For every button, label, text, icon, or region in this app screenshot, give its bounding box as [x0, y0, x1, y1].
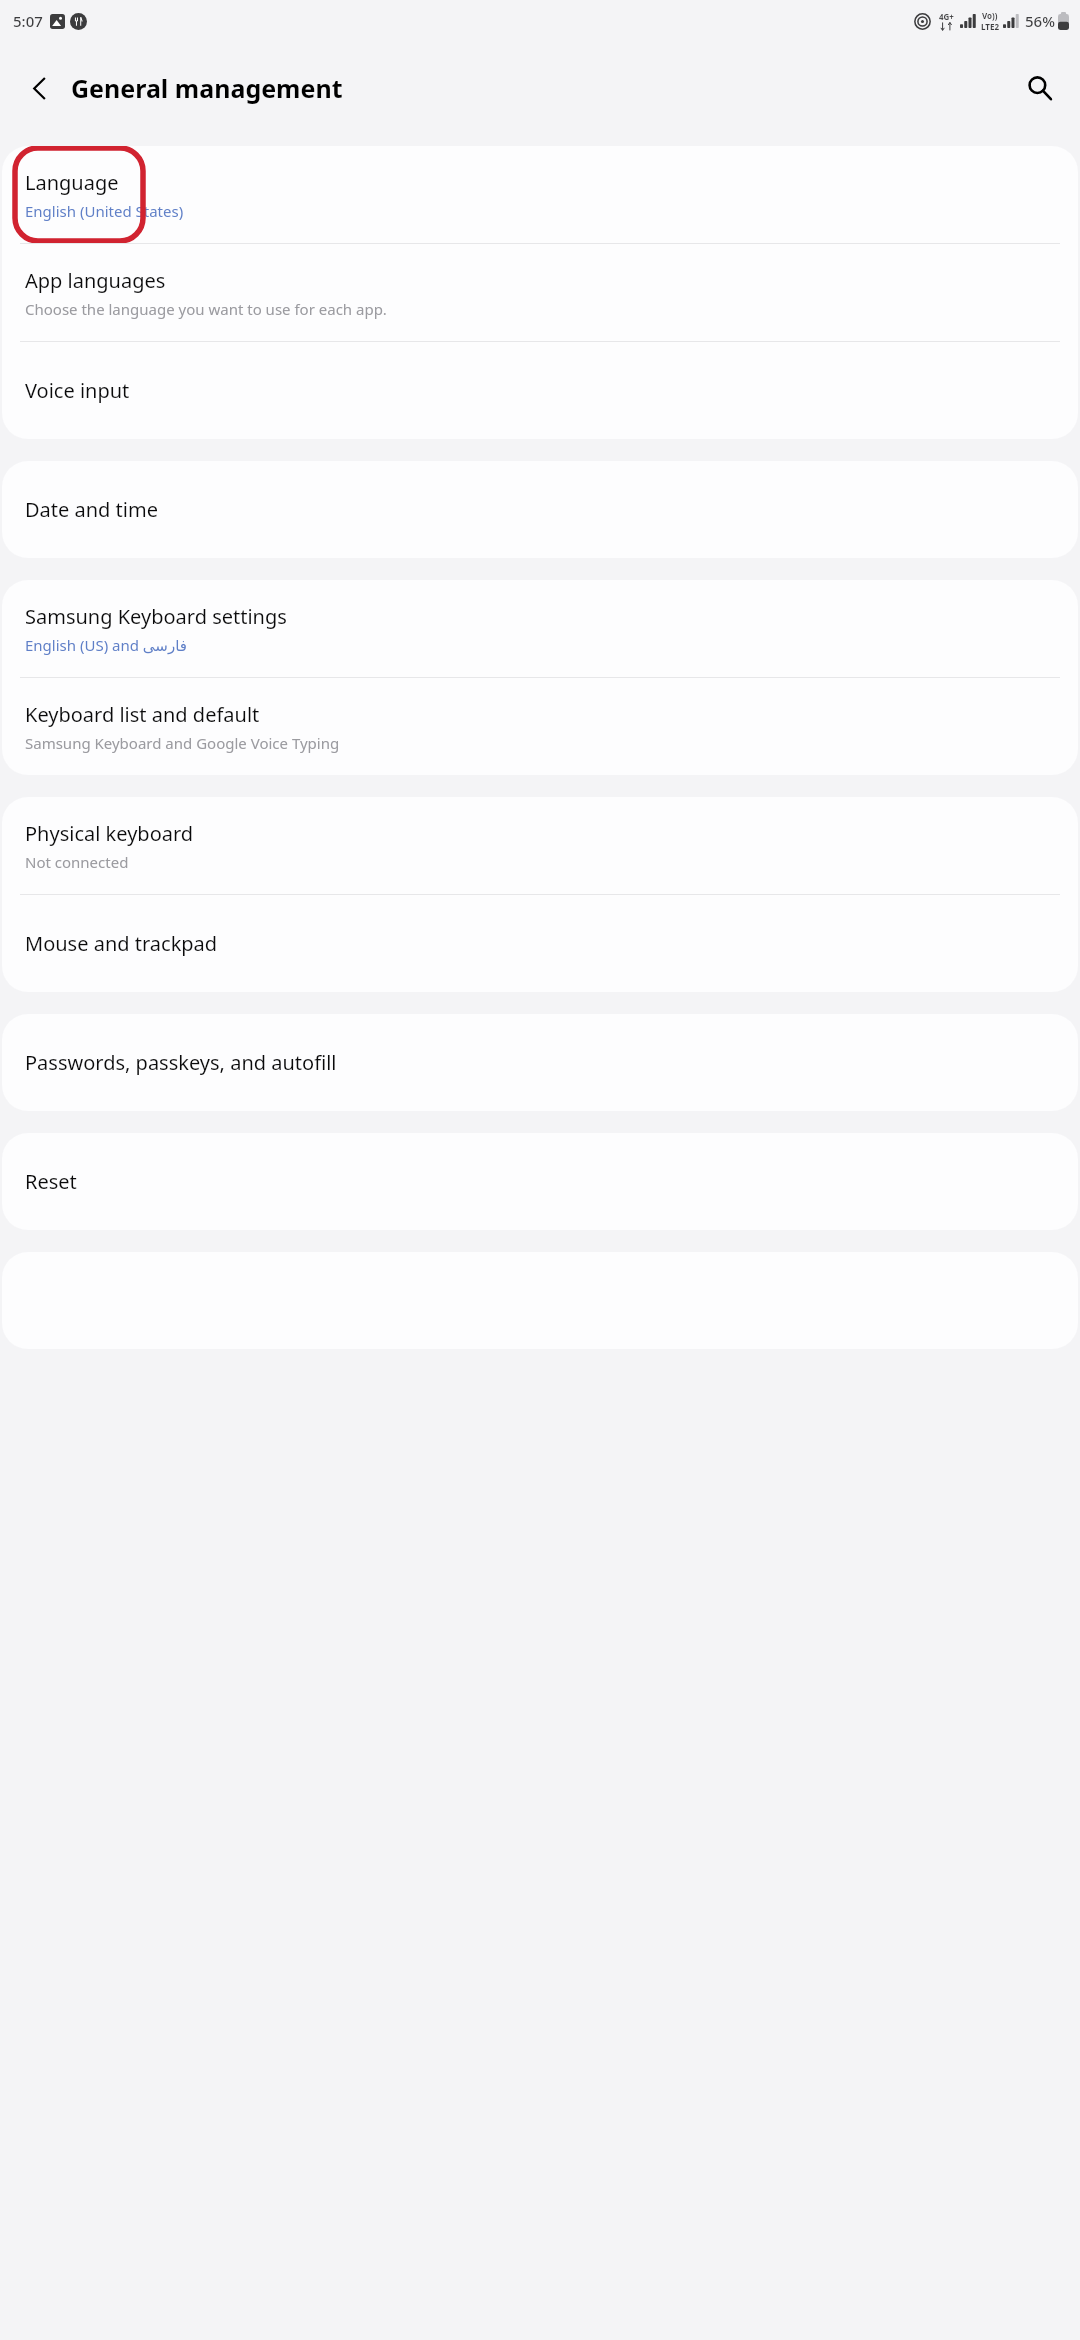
staticText: 5:07: [13, 11, 43, 31]
button[interactable]: Keyboard list and default: [2, 678, 1078, 775]
button[interactable]: Back: [13, 62, 65, 114]
staticText: Date and time: [25, 496, 158, 523]
staticText: English (United States): [25, 201, 184, 221]
staticText: App languages: [25, 267, 166, 294]
staticText: Samsung Keyboard and Google Voice Typing: [25, 733, 340, 753]
button[interactable]: Mouse and trackpad: [2, 895, 1078, 992]
staticText: Language: [25, 169, 119, 196]
button[interactable]: Physical keyboard: [2, 797, 1078, 894]
staticText: LTE2: [981, 21, 999, 32]
staticText: Choose the language you want to use for …: [25, 299, 387, 319]
button[interactable]: Search: [1014, 62, 1066, 114]
staticText: Reset: [25, 1168, 77, 1195]
button[interactable]: Language: [2, 146, 1078, 243]
staticText: English (US) and فارسی: [25, 635, 187, 655]
button[interactable]: Reset: [2, 1133, 1078, 1230]
button[interactable]: Passwords, passkeys, and autofill: [2, 1014, 1078, 1111]
button[interactable]: Samsung Keyboard settings: [2, 580, 1078, 677]
staticText: Physical keyboard: [25, 820, 194, 847]
staticText: Not connected: [25, 852, 129, 872]
staticText: 4G+: [939, 11, 954, 22]
staticText: Mouse and trackpad: [25, 930, 218, 957]
button[interactable]: Voice input: [2, 342, 1078, 439]
staticText: Voice input: [25, 377, 130, 404]
staticText: General management: [71, 71, 343, 105]
staticText: Passwords, passkeys, and autofill: [25, 1049, 337, 1076]
staticText: Samsung Keyboard settings: [25, 603, 287, 630]
button[interactable]: App languages: [2, 244, 1078, 341]
staticText: 56%: [1025, 11, 1055, 31]
button[interactable]: Date and time: [2, 461, 1078, 558]
staticText: Keyboard list and default: [25, 701, 260, 728]
staticText: Vo)): [982, 10, 998, 21]
